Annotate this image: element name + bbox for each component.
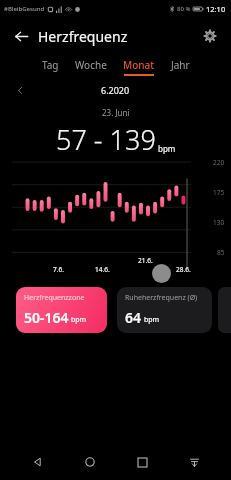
button[interactable]: Home [75,447,105,477]
staticText: 130 [213,218,225,227]
staticText: 175 [213,188,225,197]
staticText: #BleibGesund [4,5,45,13]
button[interactable]: Ruheherzfrequenz (Ø) [117,287,212,333]
staticText: 23. Juni [102,107,130,118]
staticText: Jahr [171,58,190,72]
button[interactable]: Hide keyboard [179,447,209,477]
staticText: 64 [125,308,142,327]
staticText: bpm [158,143,176,154]
staticText: 85 [217,248,225,257]
staticText: 12:10 [206,4,226,14]
button[interactable]: Tag [39,57,62,77]
staticText: Tag [42,58,59,72]
staticText: 6.2020 [101,84,130,96]
staticText: Ruheherzfrequenz (Ø) [125,293,198,303]
button[interactable]: Monat [120,57,158,77]
button[interactable] [218,287,231,333]
button[interactable]: Settings [197,23,223,49]
staticText: 220 [213,158,225,167]
button[interactable]: Chart scrubber [152,264,171,283]
button[interactable]: Jahr [168,57,193,77]
staticText: 7.6. [53,265,64,274]
button[interactable]: Back [23,447,53,477]
staticText: 14.6. [95,265,110,274]
staticText: bpm [144,315,160,325]
staticText: Herzfrequenzzone [24,293,85,303]
staticText: 21.6. [138,256,153,265]
staticText: 80 % [177,5,191,13]
staticText: 28.6. [176,265,191,274]
staticText: Monat [123,58,155,72]
button[interactable]: Herzfrequenzzone [16,287,107,333]
staticText: 50-164 [24,308,69,327]
button[interactable]: Recent apps [127,447,157,477]
button[interactable]: Previous month [10,80,30,100]
staticText: 57 - 139 [56,121,156,158]
button[interactable]: Woche [72,57,110,77]
staticText: Woche [75,58,107,72]
staticText: bpm [71,315,87,325]
button[interactable]: Back [8,23,34,49]
staticText: Herzfrequenz [38,27,128,46]
